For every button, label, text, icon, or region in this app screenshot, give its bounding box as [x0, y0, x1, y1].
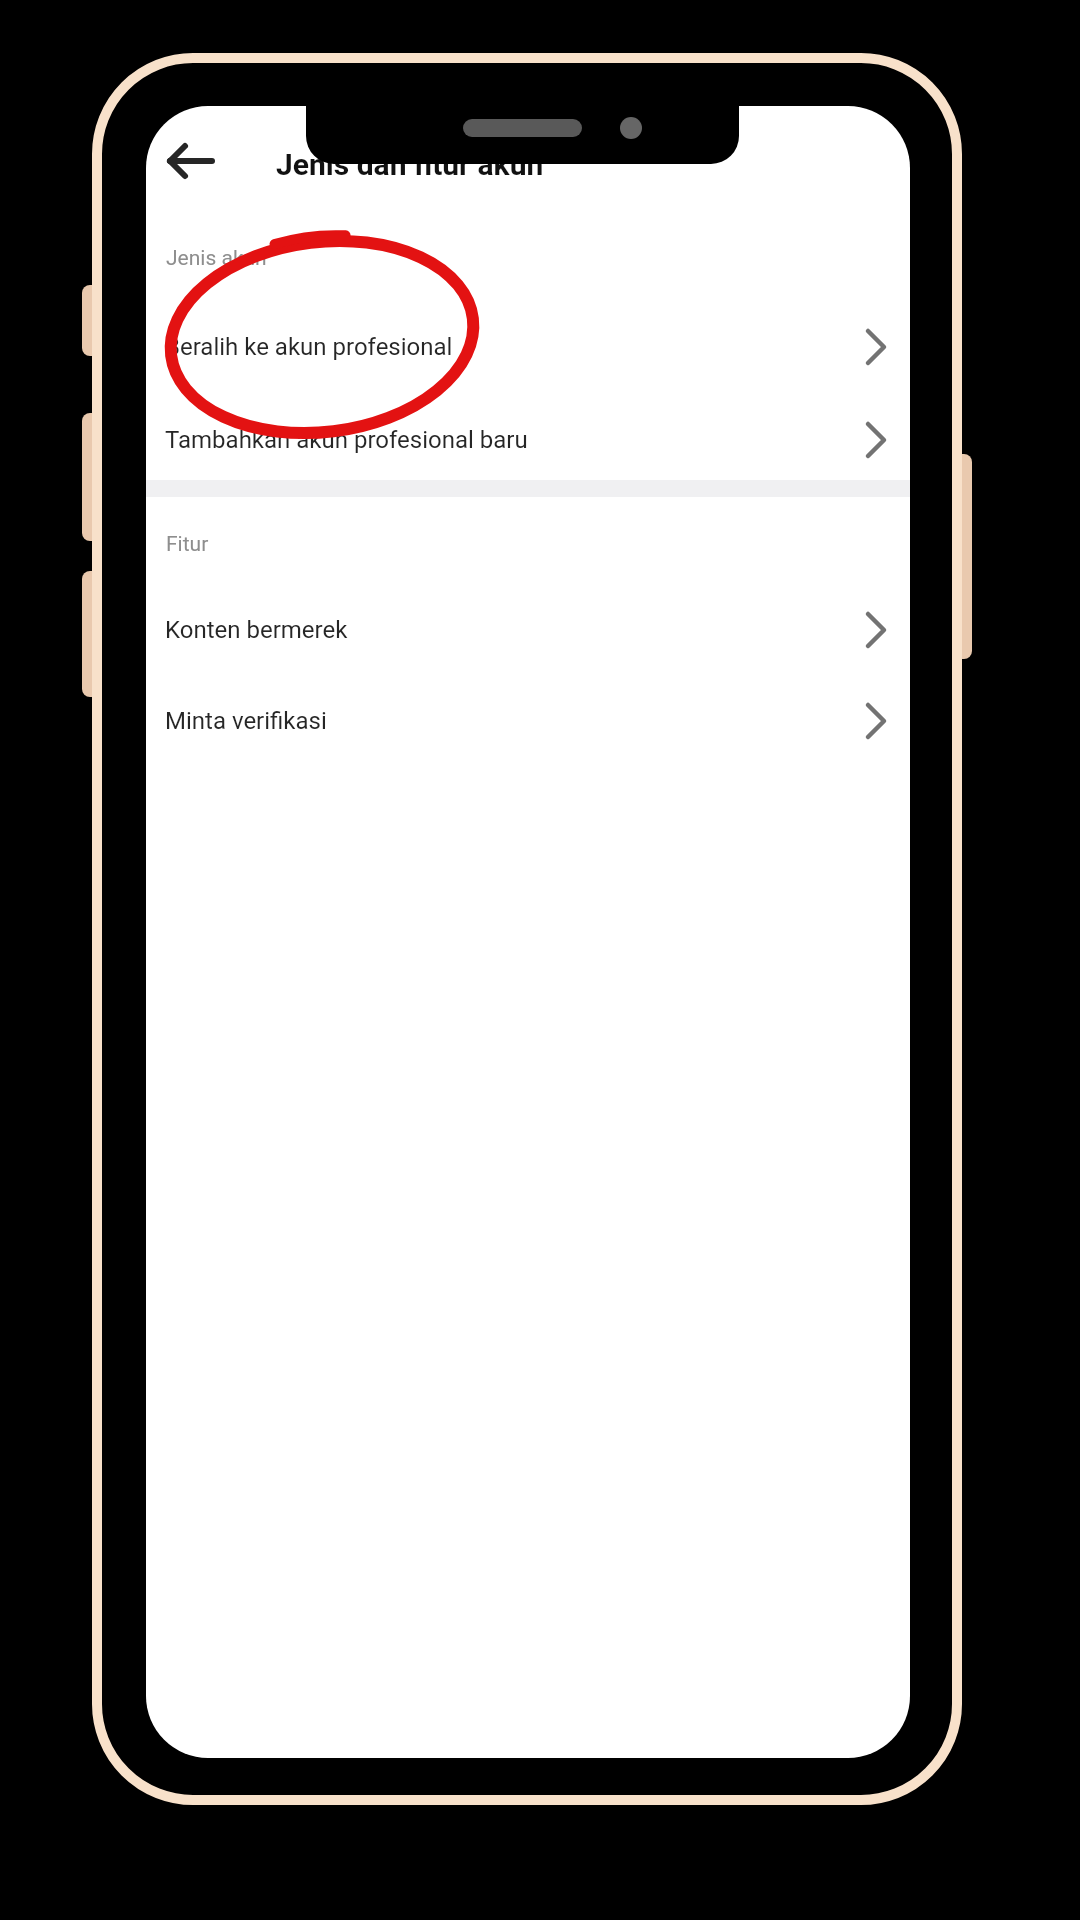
staticText: Konten bermerek	[165, 616, 348, 644]
button[interactable]: Beralih ke akun profesional	[146, 297, 910, 397]
staticText: Minta verifikasi	[165, 707, 327, 735]
staticText: Jenis akun	[166, 246, 267, 271]
button[interactable]: Tambahkan akun profesional baru	[146, 390, 910, 490]
button[interactable]: Konten bermerek	[146, 580, 910, 680]
staticText: Tambahkan akun profesional baru	[165, 426, 528, 454]
staticText: Jenis dan fitur akun	[276, 147, 544, 182]
staticText: Beralih ke akun profesional	[165, 333, 453, 361]
button[interactable]	[160, 130, 222, 192]
button[interactable]: Minta verifikasi	[146, 671, 910, 771]
staticText: Fitur	[166, 532, 209, 557]
